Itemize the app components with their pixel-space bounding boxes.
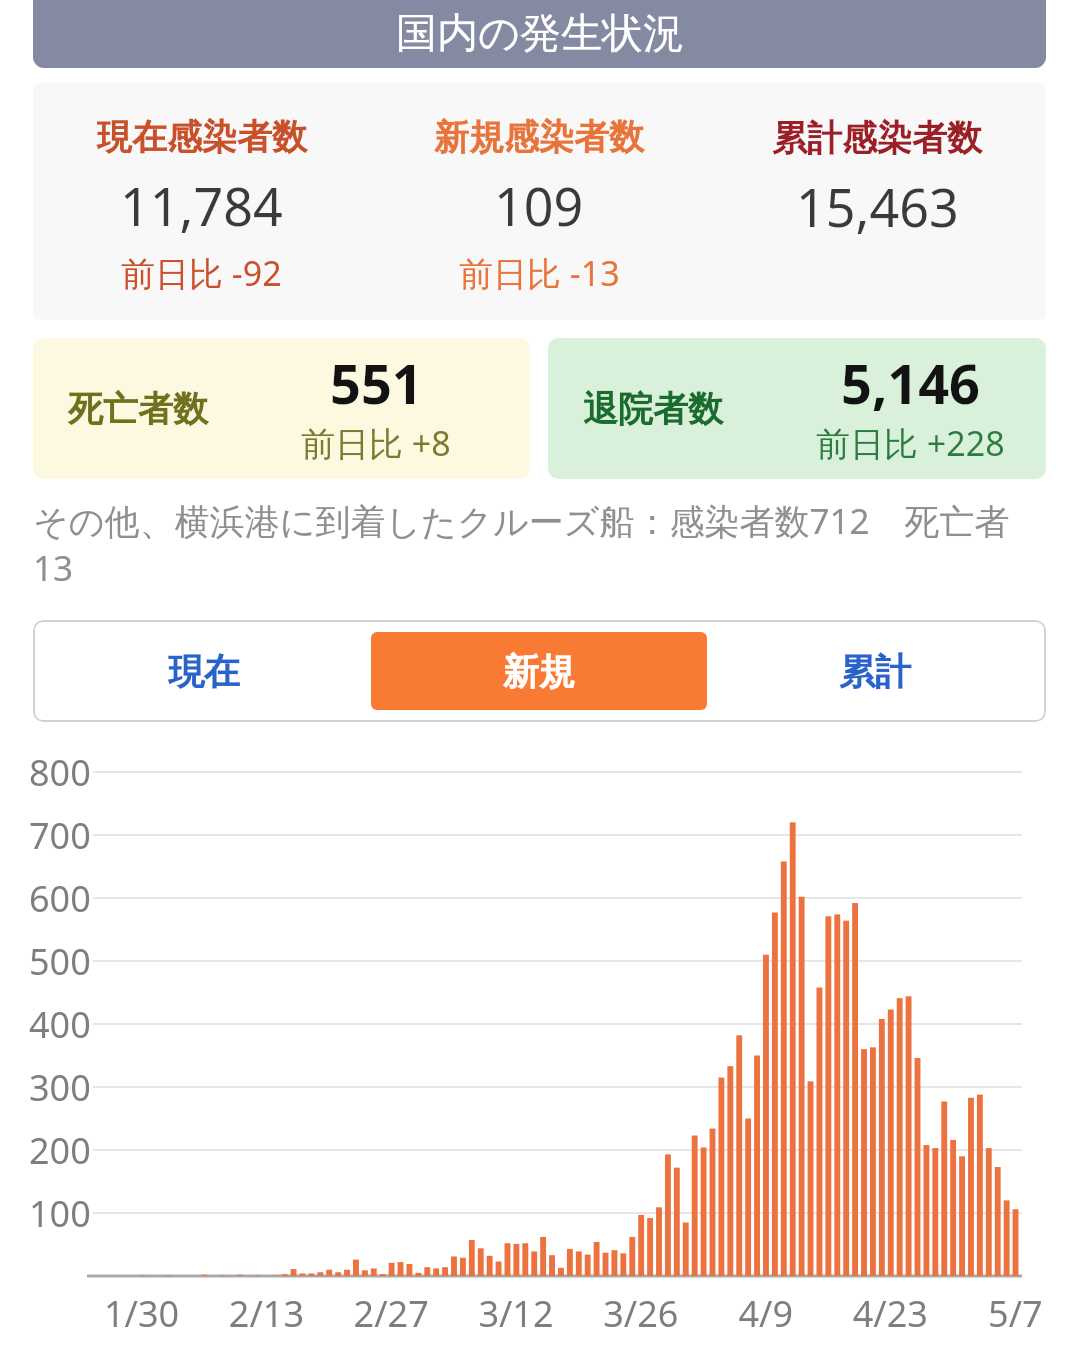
staticText: 現在感染者数 — [97, 115, 307, 159]
button[interactable]: 退院者数 — [548, 338, 1046, 479]
staticText: 累計感染者数 — [772, 116, 982, 160]
staticText: 15,463 — [796, 171, 959, 242]
staticText: 前日比 -92 — [121, 250, 282, 296]
button[interactable]: 新規 — [371, 632, 707, 710]
button[interactable]: 現在感染者数 — [33, 91, 370, 320]
staticText: 5,146 — [841, 346, 980, 420]
staticText: 新規感染者数 — [434, 115, 644, 159]
staticText: 551 — [330, 346, 423, 420]
button[interactable]: 累計感染者数 — [708, 91, 1046, 320]
staticText: 前日比 +228 — [816, 420, 1005, 466]
staticText: 累計 — [839, 649, 911, 694]
button[interactable]: 累計 — [707, 632, 1043, 710]
staticText: 前日比 -13 — [459, 250, 620, 296]
staticText: 退院者数 — [583, 387, 723, 431]
button[interactable]: 死亡者数 — [33, 338, 530, 479]
staticText: 前日比 +8 — [301, 420, 451, 466]
button[interactable]: 新規感染者数 — [370, 91, 708, 320]
staticText: 109 — [494, 170, 584, 241]
staticText: 新規 — [503, 649, 575, 694]
staticText: 11,784 — [120, 170, 283, 241]
staticText: 死亡者数 — [68, 387, 208, 431]
button[interactable]: 国内の発生状況 — [33, 0, 1046, 68]
staticText: 国内の発生状況 — [396, 8, 684, 60]
staticText: その他、横浜港に到着したクルーズ船：感染者数712 死亡者13 — [33, 497, 1015, 591]
staticText: 現在 — [168, 649, 240, 694]
button[interactable]: 現在 — [36, 632, 371, 710]
